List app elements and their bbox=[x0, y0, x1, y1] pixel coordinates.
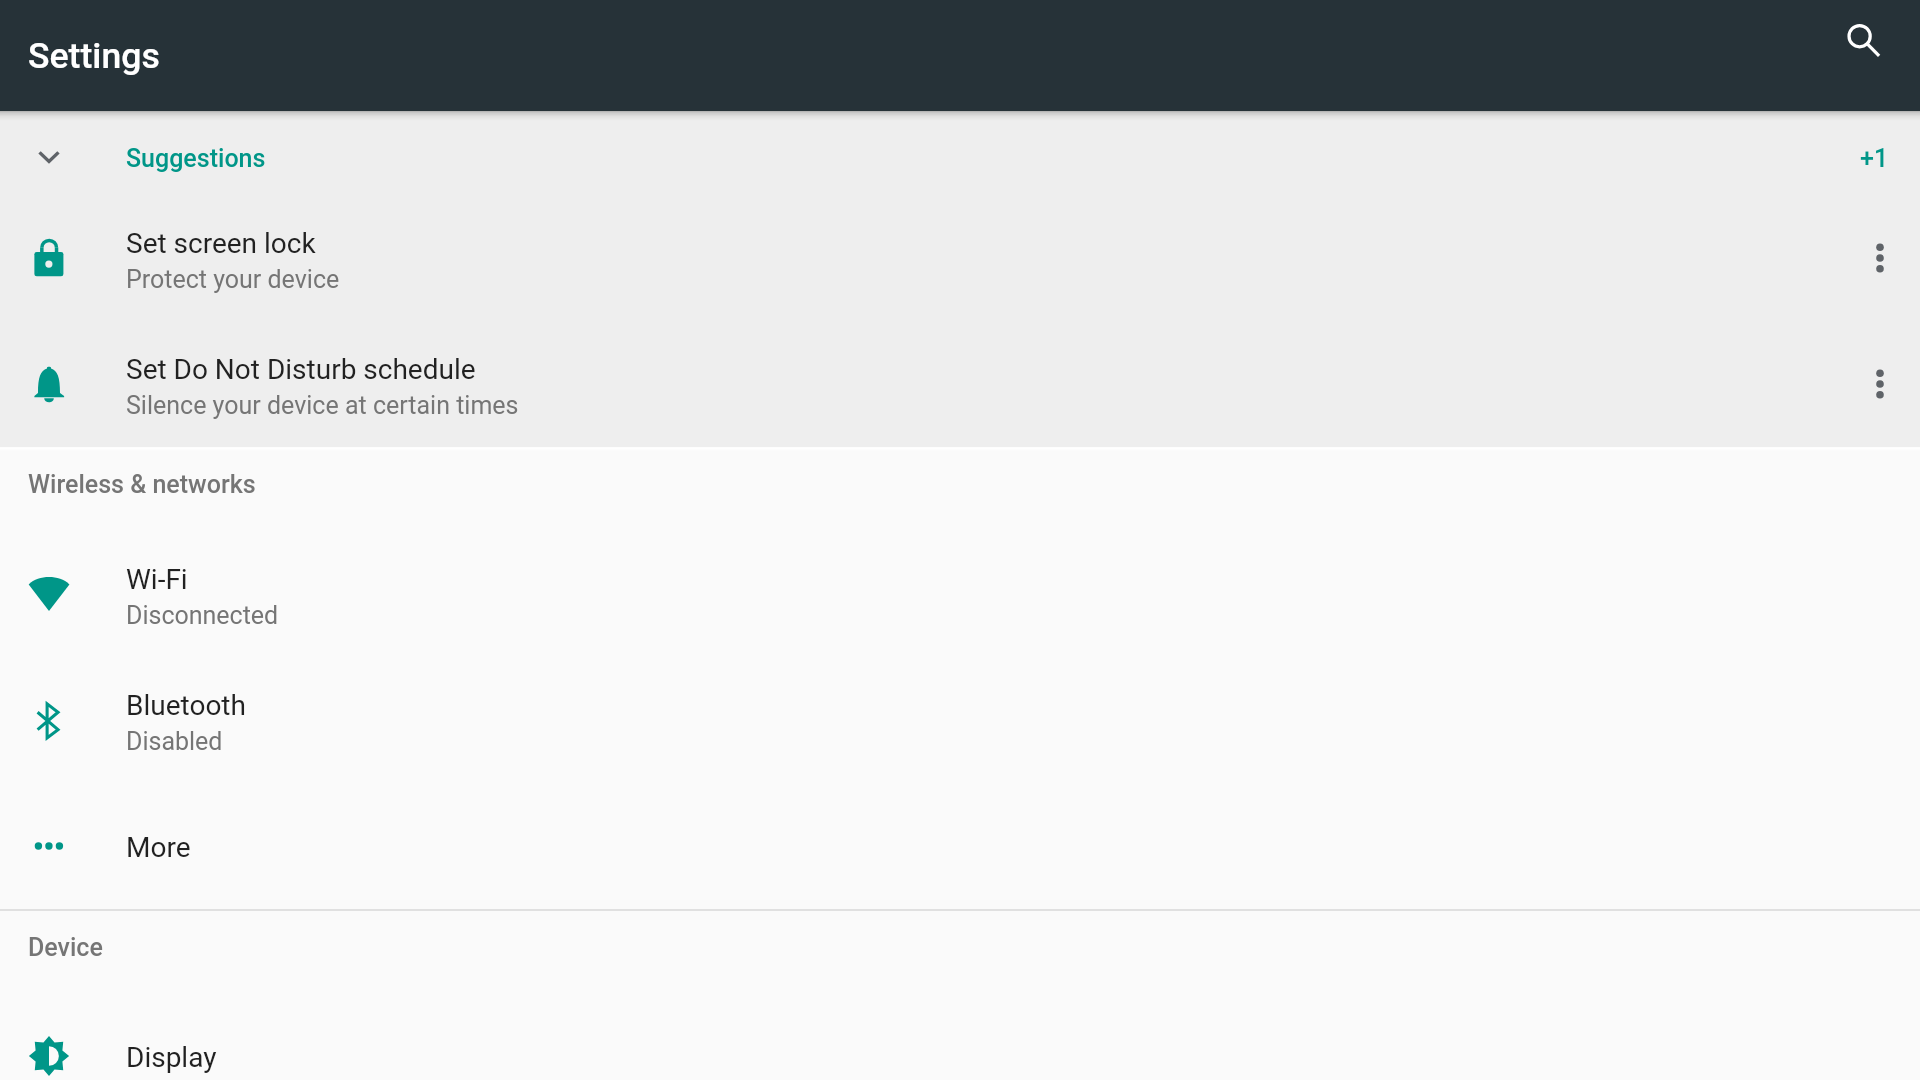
staticText: Device bbox=[28, 933, 103, 962]
staticText: Set Do Not Disturb schedule bbox=[126, 353, 476, 386]
button[interactable]: More bbox=[0, 783, 1920, 909]
button[interactable]: Suggestions bbox=[0, 111, 1920, 195]
staticText: Disconnected bbox=[126, 601, 279, 630]
staticText: Bluetooth bbox=[126, 689, 246, 722]
button[interactable]: More options bbox=[1839, 195, 1920, 321]
button[interactable]: Set screen lock bbox=[0, 195, 1920, 321]
staticText: Silence your device at certain times bbox=[126, 391, 519, 420]
staticText: Display bbox=[126, 1041, 217, 1074]
staticText: Wi-Fi bbox=[126, 563, 188, 596]
button[interactable]: Search bbox=[1821, 0, 1905, 84]
staticText: Disabled bbox=[126, 727, 223, 756]
button[interactable]: Display bbox=[0, 996, 1920, 1080]
staticText: More bbox=[126, 831, 191, 864]
button[interactable]: Wi-Fi bbox=[0, 531, 1920, 657]
button[interactable]: Bluetooth bbox=[0, 657, 1920, 783]
staticText: Wireless & networks bbox=[28, 470, 256, 499]
staticText: Protect your device bbox=[126, 265, 340, 294]
staticText: Settings bbox=[28, 35, 160, 77]
button[interactable]: Set Do Not Disturb schedule bbox=[0, 321, 1920, 447]
staticText: Suggestions bbox=[126, 144, 266, 173]
button[interactable]: More options bbox=[1839, 321, 1920, 447]
staticText: Set screen lock bbox=[126, 227, 316, 260]
staticText: +1 bbox=[1860, 144, 1889, 173]
